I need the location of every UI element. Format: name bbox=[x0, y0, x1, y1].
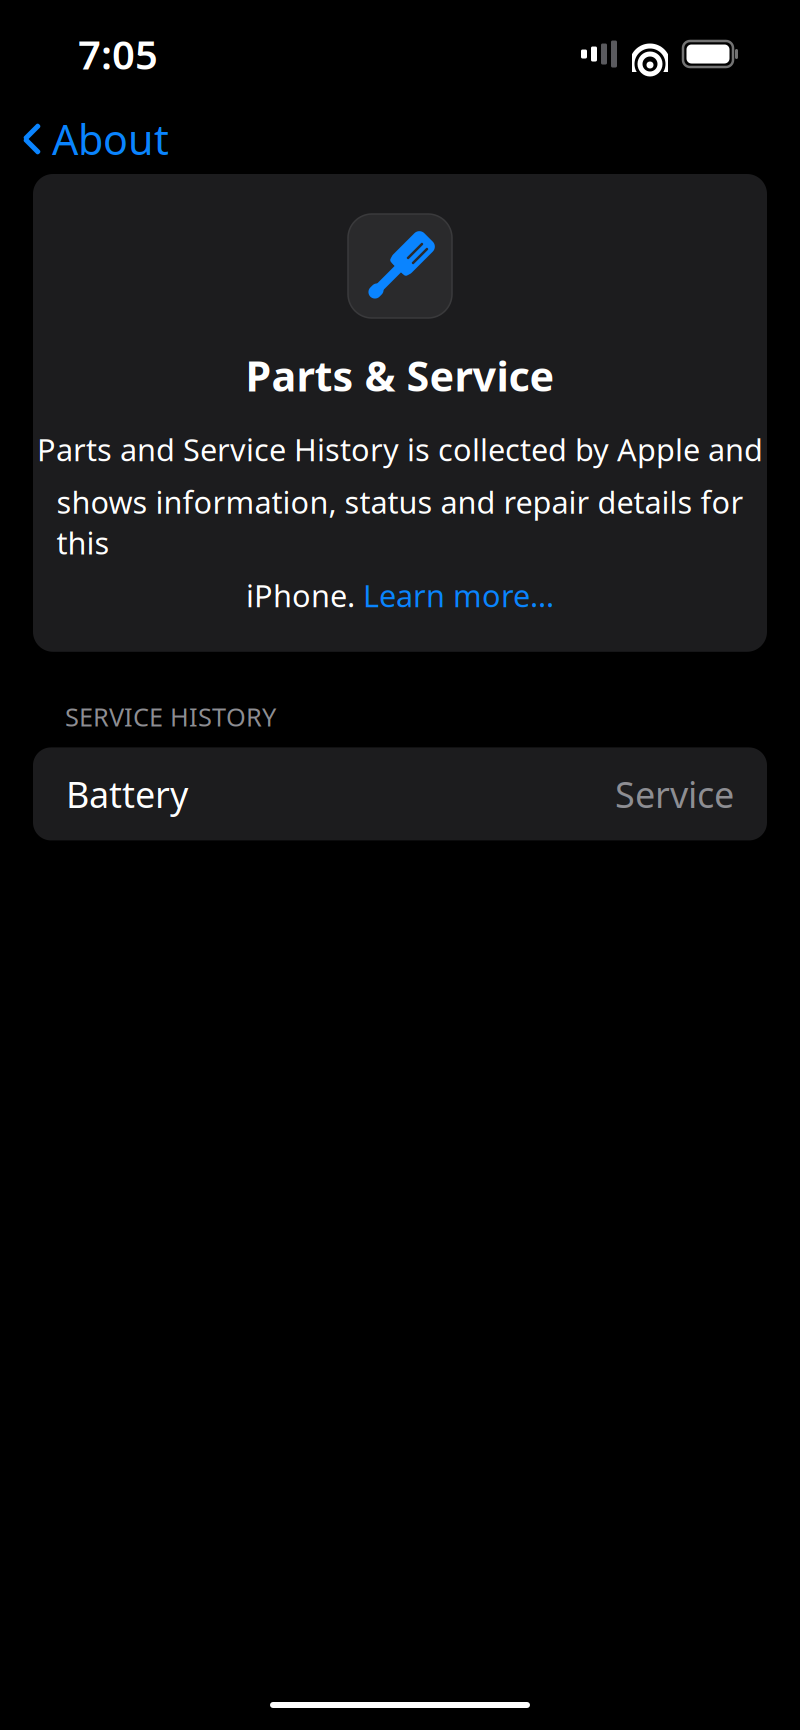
button[interactable]: About bbox=[0, 102, 185, 176]
staticText: iPhone. bbox=[246, 575, 363, 616]
button[interactable]: Learn more... bbox=[363, 575, 554, 616]
staticText: Battery bbox=[66, 770, 188, 818]
staticText: SERVICE HISTORY bbox=[65, 700, 276, 733]
button[interactable]: Battery bbox=[33, 747, 767, 840]
staticText: Learn more... bbox=[363, 575, 554, 616]
staticText: Parts & Service bbox=[245, 348, 554, 403]
staticText: About bbox=[52, 112, 169, 166]
staticText: Parts and Service History is collected b… bbox=[37, 429, 763, 470]
staticText: 7:05 bbox=[78, 27, 158, 80]
staticText: shows information, status and repair det… bbox=[56, 482, 743, 563]
staticText: Service bbox=[615, 770, 734, 818]
